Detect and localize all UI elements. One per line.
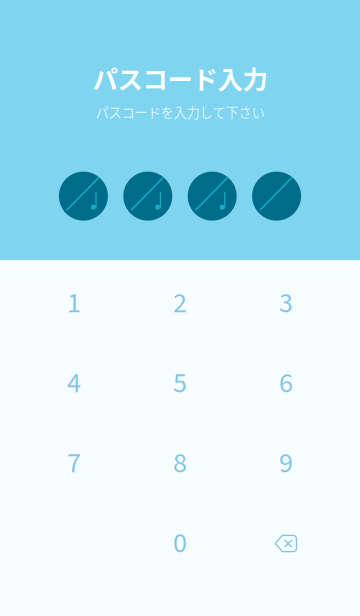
button[interactable]: 1 bbox=[21, 263, 127, 343]
staticText: 6 bbox=[279, 364, 293, 403]
button[interactable]: 4 bbox=[21, 343, 127, 423]
button[interactable]: 2 bbox=[127, 263, 233, 343]
staticText: 1 bbox=[67, 284, 81, 323]
staticText: 5 bbox=[173, 364, 187, 403]
staticText: 4 bbox=[67, 364, 81, 403]
staticText: パスコード入力 bbox=[92, 60, 267, 96]
staticText: パスコードを入力して下さい bbox=[95, 102, 264, 122]
button[interactable]: 5 bbox=[127, 343, 233, 423]
button[interactable]: 6 bbox=[233, 343, 339, 423]
button[interactable]: 9 bbox=[233, 423, 339, 503]
button[interactable]: Delete bbox=[233, 503, 339, 583]
button[interactable]: 0 bbox=[127, 503, 233, 583]
button[interactable]: 3 bbox=[233, 263, 339, 343]
staticText: 3 bbox=[279, 284, 293, 323]
button[interactable]: 7 bbox=[21, 423, 127, 503]
staticText: 8 bbox=[173, 444, 187, 483]
staticText: 2 bbox=[173, 284, 187, 323]
button[interactable]: 8 bbox=[127, 423, 233, 503]
staticText: 9 bbox=[279, 444, 293, 483]
staticText: 0 bbox=[173, 524, 187, 563]
staticText: 7 bbox=[67, 444, 81, 483]
